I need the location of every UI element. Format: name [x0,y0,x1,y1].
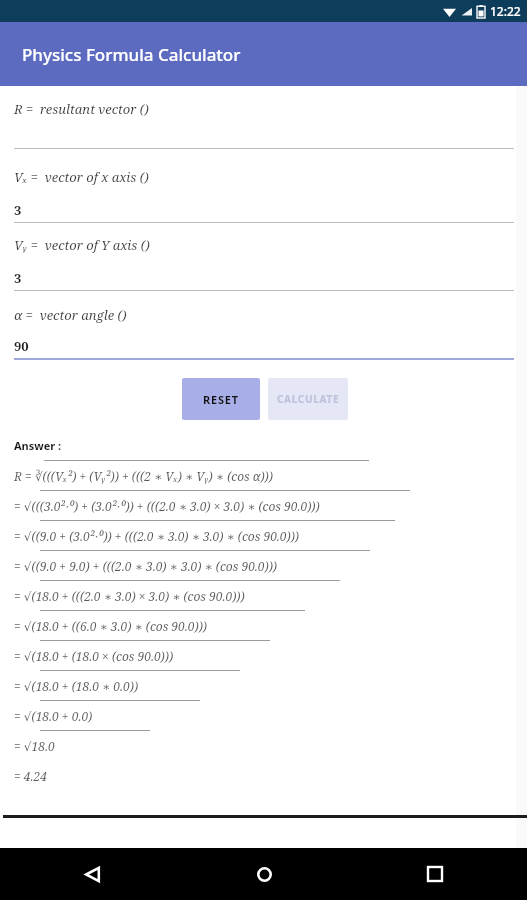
staticText: = √((9.0 + 9.0) + (((2.0 ∗ 3.0) ∗ 3.0) ∗… [14,558,278,574]
button[interactable]: RESET [182,378,260,420]
staticText: R = resultant vector () [14,100,149,118]
button[interactable]: Back [70,852,114,896]
staticText: = √18.0 [14,738,55,754]
staticText: RESET [203,392,239,407]
button[interactable]: CALCULATE [268,378,348,420]
staticText: Vₓ = vector of x axis () [14,168,149,186]
staticText: = 4.24 [14,768,47,784]
staticText: = √(18.0 + (18.0 ∗ 0.0)) [14,678,139,694]
button[interactable]: Recent apps [413,852,457,896]
staticText: Physics Formula Calculator [22,43,241,66]
staticText: Vᵧ = vector of Y axis () [14,236,150,254]
staticText: = √(18.0 + (18.0 × (cos 90.0))) [14,648,174,664]
staticText: R = ∛(((Vₓ²) + (Vᵧ²)) + (((2 ∗ Vₓ) ∗ Vᵧ)… [14,468,273,484]
button[interactable]: Home [242,852,286,896]
staticText: = √(18.0 + (((2.0 ∗ 3.0) × 3.0) ∗ (cos 9… [14,588,245,604]
staticText: α = vector angle () [14,306,127,324]
staticText: 90 [14,337,29,355]
staticText: = √((9.0 + (3.0²⋅⁰)) + (((2.0 ∗ 3.0) ∗ 3… [14,528,300,544]
staticText: 12:22 [490,3,521,19]
staticText: = √(18.0 + 0.0) [14,708,93,724]
staticText: = √(18.0 + ((6.0 ∗ 3.0) ∗ (cos 90.0))) [14,618,207,634]
staticText: Answer : [14,438,62,453]
staticText: 3 [14,201,22,219]
staticText: 3 [14,269,22,287]
staticText: = √(((3.0²⋅⁰) + (3.0²⋅⁰)) + (((2.0 ∗ 3.0… [14,498,320,514]
staticText: CALCULATE [277,392,340,406]
